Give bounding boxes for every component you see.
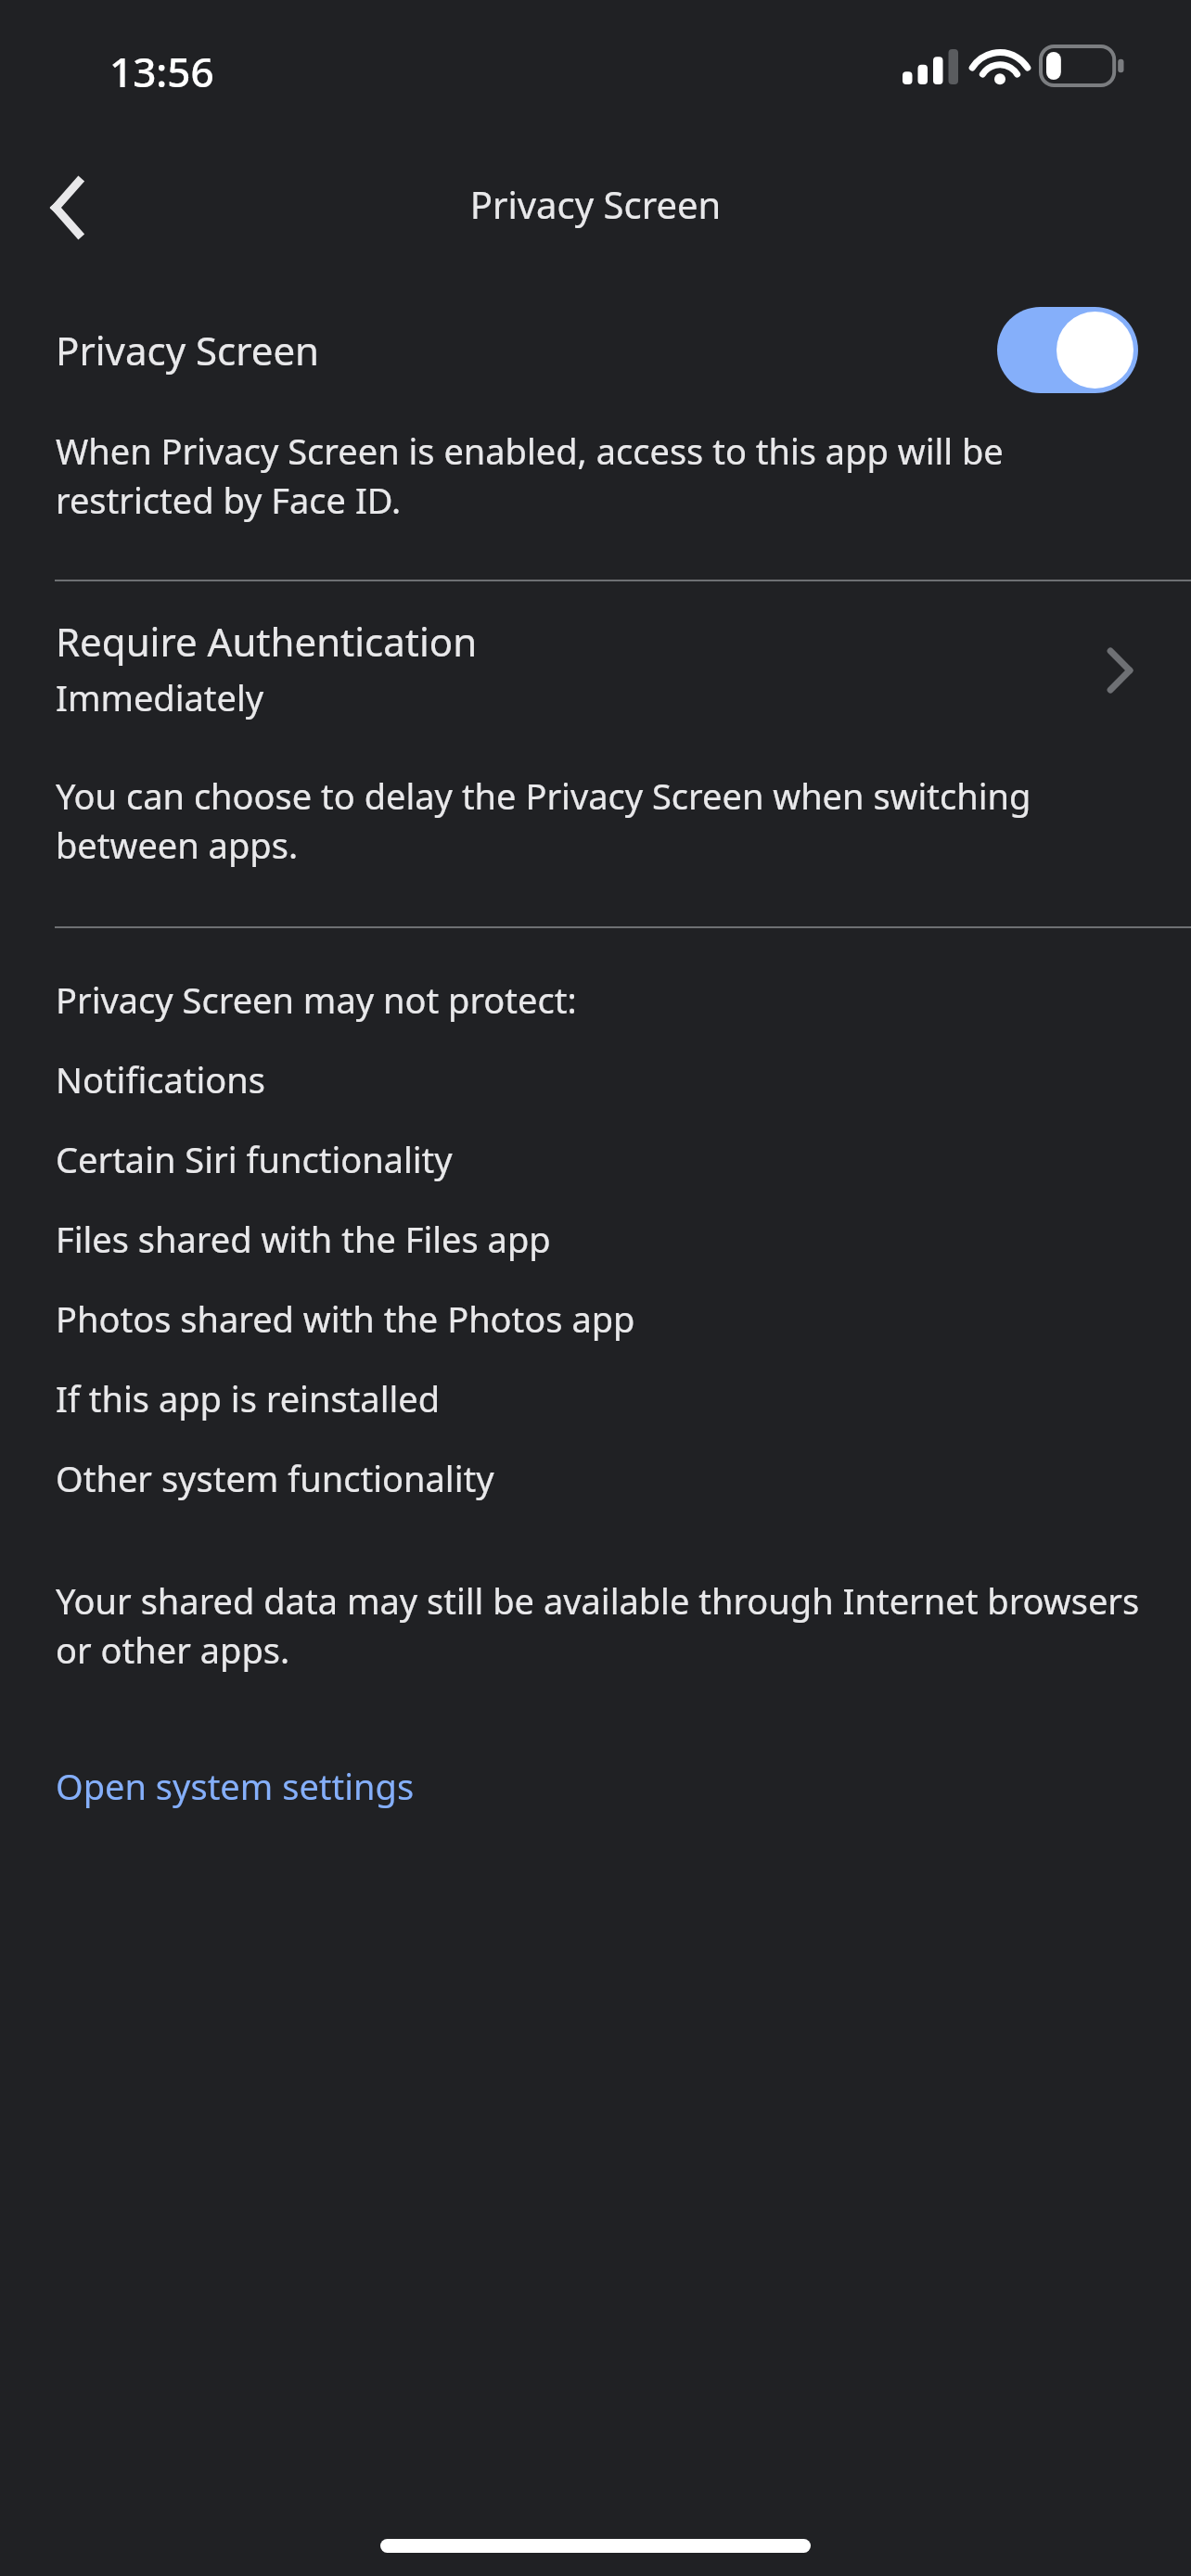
staticText: When Privacy Screen is enabled, access t… [56,427,1150,525]
staticText: Require Authentication [56,615,478,668]
staticText: Privacy Screen [0,179,1191,229]
staticText: Immediately [56,673,264,721]
staticText: Notifications [56,1055,266,1103]
staticText: Privacy Screen may not protect: [56,976,577,1024]
staticText: Privacy Screen [56,324,320,376]
staticText: Open system settings [56,1762,415,1810]
staticText: 13:56 [109,44,214,99]
button[interactable]: Open system settings [56,1753,415,1819]
staticText: You can choose to delay the Privacy Scre… [56,772,1150,870]
staticText: If this app is reinstalled [56,1374,441,1422]
staticText: Files shared with the Files app [56,1215,551,1263]
button[interactable]: Privacy Screen [0,292,1191,408]
staticText: Other system functionality [56,1454,494,1502]
staticText: Your shared data may still be available … [56,1576,1150,1675]
staticText: Photos shared with the Photos app [56,1294,635,1343]
staticText: Certain Siri functionality [56,1135,453,1183]
button[interactable]: Back [26,165,108,250]
button[interactable]: Require Authentication [0,598,1191,742]
